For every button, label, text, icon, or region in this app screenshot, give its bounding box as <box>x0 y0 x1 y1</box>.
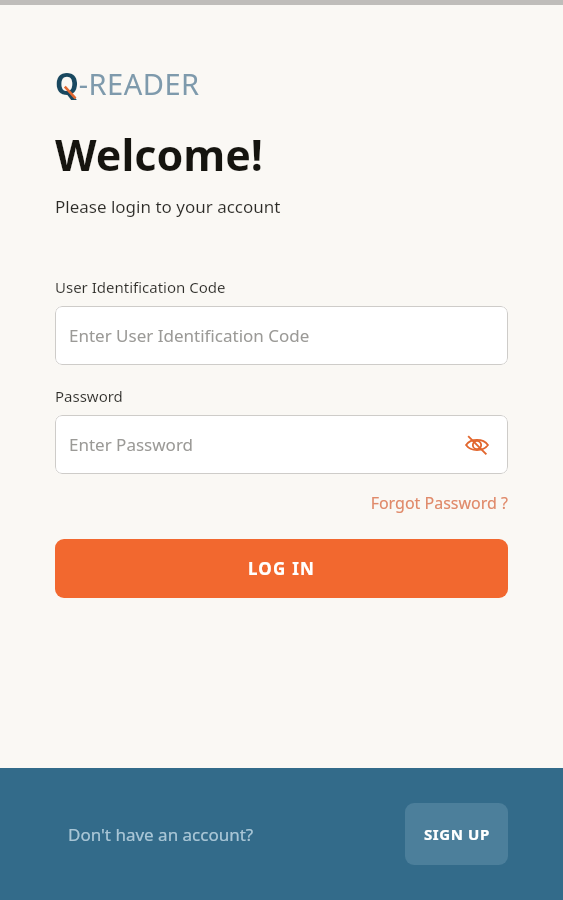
staticText: Enter User Identification Code <box>69 324 310 347</box>
button[interactable]: Show password <box>460 428 494 462</box>
staticText: User Identification Code <box>55 277 226 297</box>
button[interactable]: Enter Password <box>55 415 508 474</box>
staticText: LOG IN <box>248 557 315 580</box>
staticText: Enter Password <box>69 433 194 456</box>
button[interactable]: LOG IN <box>55 539 508 598</box>
staticText: SIGN UP <box>424 824 490 844</box>
button[interactable]: Enter User Identification Code <box>55 306 508 365</box>
button[interactable]: Don't have an account? <box>68 823 254 846</box>
staticText: Welcome! <box>55 125 263 184</box>
staticText: Q-READER <box>55 63 200 103</box>
button[interactable]: SIGN UP <box>405 803 508 865</box>
button[interactable]: Forgot Password ? <box>55 492 508 514</box>
staticText: Password <box>55 386 123 406</box>
staticText: Please login to your account <box>55 195 281 218</box>
